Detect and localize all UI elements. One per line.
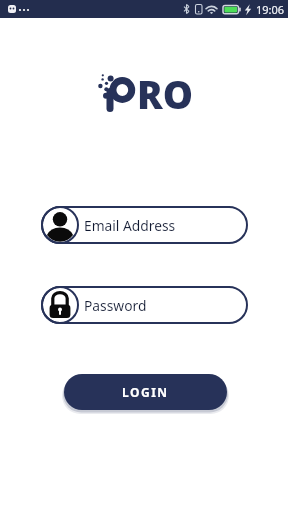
staticText: RO: [137, 68, 194, 120]
button[interactable]: Password: [41, 286, 248, 324]
button[interactable]: Email Address: [41, 206, 248, 244]
staticText: LOGIN: [122, 384, 169, 400]
staticText: Password: [84, 296, 147, 315]
button[interactable]: LOGIN: [64, 374, 227, 410]
staticText: Email Address: [84, 216, 176, 235]
staticText: 19:06: [256, 2, 285, 17]
